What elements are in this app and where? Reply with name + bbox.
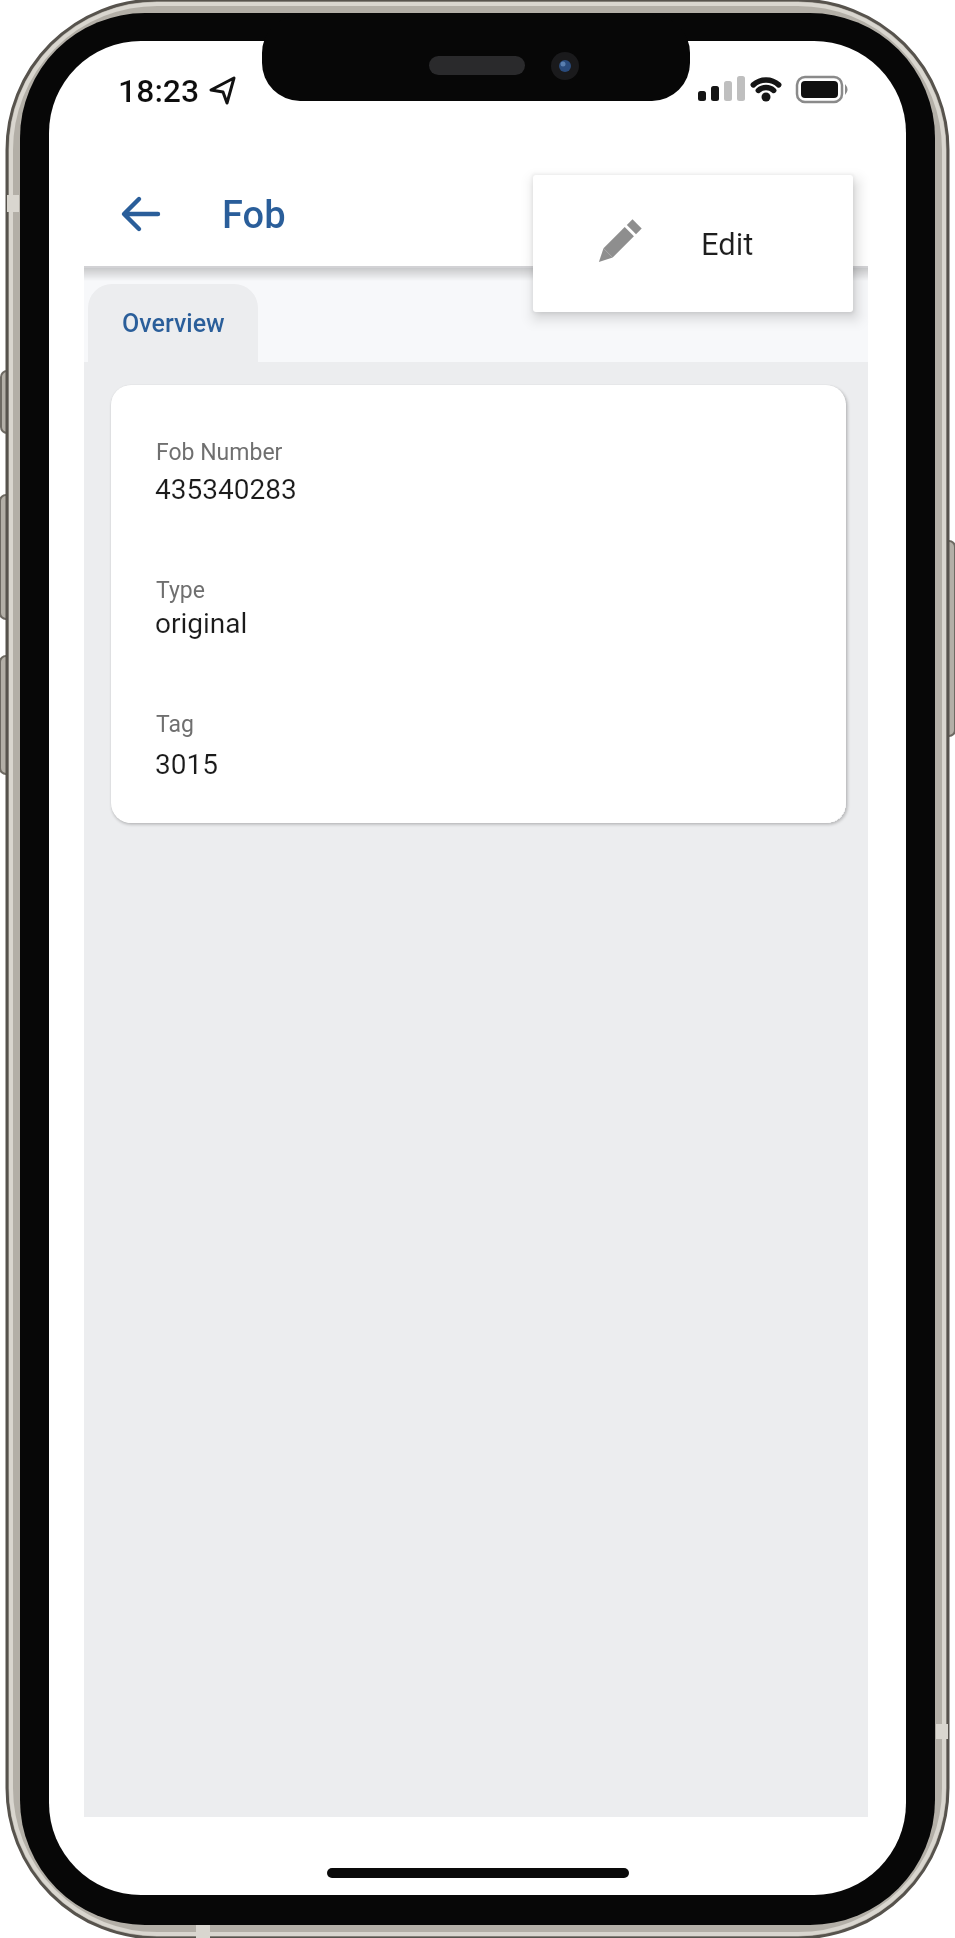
button[interactable]: Overview — [88, 284, 258, 363]
button[interactable]: Edit — [533, 175, 853, 312]
staticText: 3015 — [155, 748, 218, 781]
staticText: Fob Number — [156, 439, 283, 466]
staticText: Type — [156, 577, 205, 604]
staticText: Tag — [156, 711, 194, 738]
staticText: Edit — [701, 226, 754, 262]
staticText: 18:23 — [118, 72, 200, 110]
staticText: Fob — [222, 193, 286, 238]
staticText: Overview — [122, 309, 225, 338]
staticText: 435340283 — [155, 473, 297, 506]
staticText: original — [155, 607, 248, 640]
button[interactable] — [104, 180, 174, 250]
